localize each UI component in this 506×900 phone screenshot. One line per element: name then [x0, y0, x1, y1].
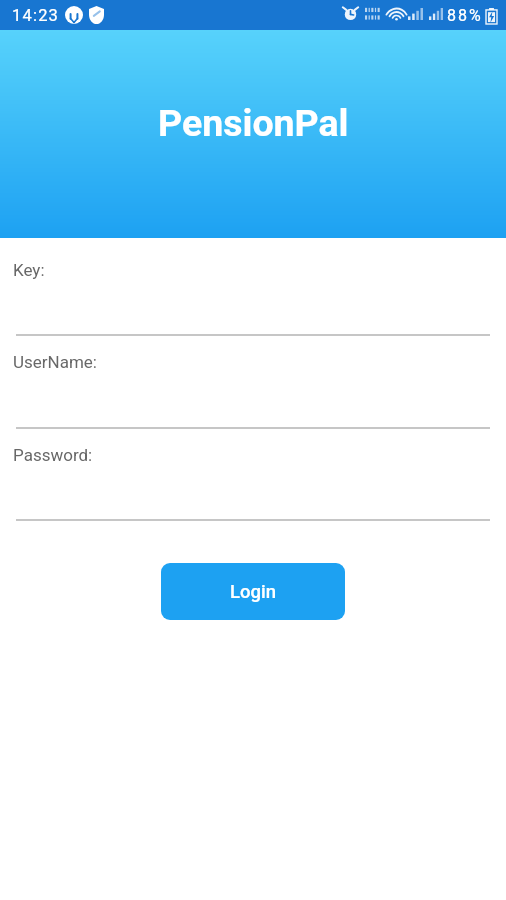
button[interactable]: Password: — [0, 437, 506, 523]
staticText: Password: — [13, 445, 93, 465]
other: Notification — [65, 6, 83, 24]
staticText: PensionPal — [158, 101, 349, 145]
staticText: UserName: — [13, 352, 97, 372]
button[interactable]: UserName: — [0, 344, 506, 431]
other: Security — [89, 6, 104, 24]
button[interactable]: Key: — [0, 252, 506, 338]
staticText: Login — [230, 581, 276, 603]
staticText: Key: — [13, 260, 45, 280]
staticText: 14:23 — [12, 6, 60, 25]
staticText: 88% — [447, 6, 483, 25]
button[interactable]: Login — [161, 563, 345, 620]
